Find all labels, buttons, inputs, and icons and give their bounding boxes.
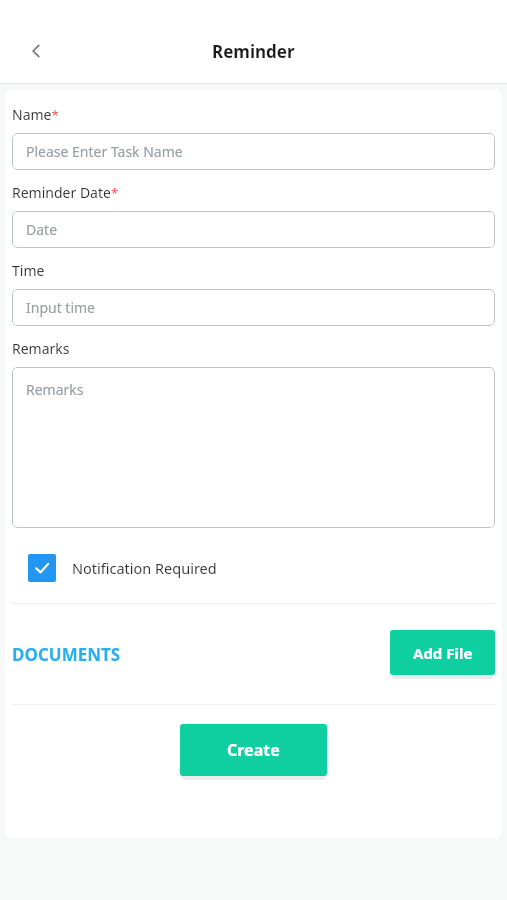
button[interactable]: DOCUMENTS xyxy=(12,643,121,666)
staticText: Name* xyxy=(12,105,59,124)
staticText: Date xyxy=(26,220,58,239)
button[interactable]: Create xyxy=(180,724,327,776)
staticText: Create xyxy=(227,739,280,761)
button[interactable]: Add File xyxy=(390,630,495,675)
staticText: Remarks xyxy=(26,380,84,399)
button[interactable]: Please Enter Task Name xyxy=(12,133,495,170)
staticText: Remarks xyxy=(12,339,70,358)
staticText: Time xyxy=(12,261,45,280)
button[interactable]: Input time xyxy=(12,289,495,326)
staticText: Notification Required xyxy=(72,558,217,578)
staticText: DOCUMENTS xyxy=(12,643,121,666)
staticText: Please Enter Task Name xyxy=(26,142,183,161)
staticText: Reminder Date* xyxy=(12,183,119,202)
button[interactable]: Back xyxy=(16,31,56,71)
button[interactable]: Date xyxy=(12,211,495,248)
staticText: Input time xyxy=(26,298,96,317)
button[interactable]: Remarks xyxy=(12,367,495,528)
button[interactable]: Notification Required xyxy=(28,551,217,585)
staticText: Add File xyxy=(413,643,473,663)
staticText: Reminder xyxy=(212,40,295,63)
